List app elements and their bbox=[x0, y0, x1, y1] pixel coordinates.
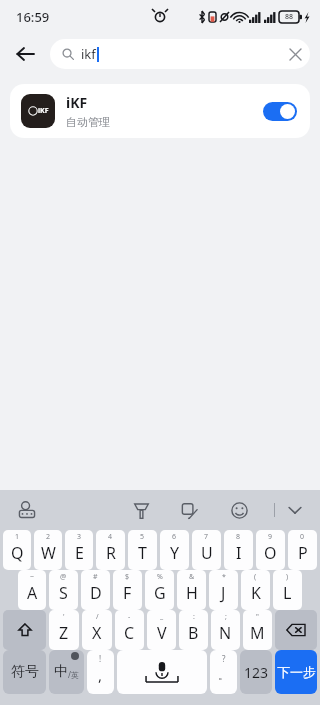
button[interactable]: / bbox=[82, 610, 112, 650]
button[interactable]: Back bbox=[0, 34, 50, 74]
staticText: 3 bbox=[77, 532, 82, 542]
button[interactable]: 符号 bbox=[3, 650, 46, 694]
staticText: iKF bbox=[66, 93, 88, 112]
button[interactable]: iKF bbox=[10, 84, 310, 138]
staticText: # bbox=[93, 572, 98, 582]
button[interactable]: * bbox=[209, 570, 238, 610]
button[interactable]: 3 bbox=[65, 530, 93, 570]
button[interactable]: 2 bbox=[34, 530, 62, 570]
staticText: * bbox=[222, 572, 226, 582]
button[interactable]: ~ bbox=[18, 570, 46, 610]
staticText: G bbox=[154, 582, 166, 604]
button[interactable]: ikf bbox=[50, 39, 310, 69]
button[interactable]: 1 bbox=[3, 530, 31, 570]
button[interactable]: ! bbox=[87, 650, 114, 694]
staticText: T bbox=[138, 542, 147, 564]
staticText: , bbox=[98, 665, 103, 685]
staticText: J bbox=[221, 582, 226, 604]
button[interactable]: ; bbox=[211, 610, 240, 650]
staticText: 8 bbox=[236, 532, 241, 542]
button[interactable]: 中 bbox=[49, 650, 84, 694]
staticText: 9 bbox=[268, 532, 273, 542]
staticText: - bbox=[128, 612, 131, 622]
button[interactable]: : bbox=[179, 610, 208, 650]
staticText: ? bbox=[222, 653, 226, 664]
button[interactable]: 123 bbox=[240, 650, 272, 694]
staticText: 0 bbox=[300, 532, 305, 542]
staticText: D bbox=[90, 582, 102, 604]
staticText: Z bbox=[59, 622, 69, 644]
button[interactable]: 5 bbox=[128, 530, 157, 570]
button[interactable]: ( bbox=[241, 570, 270, 610]
staticText: O bbox=[264, 542, 277, 564]
staticText: M bbox=[250, 622, 265, 644]
staticText: ! bbox=[99, 653, 102, 664]
staticText: ' bbox=[63, 612, 65, 622]
button[interactable]: $ bbox=[113, 570, 142, 610]
button[interactable]: % bbox=[145, 570, 174, 610]
staticText: Q bbox=[11, 542, 24, 564]
staticText: X bbox=[92, 622, 102, 644]
button[interactable]: Theme bbox=[128, 497, 154, 523]
button[interactable]: 9 bbox=[256, 530, 285, 570]
staticText: /英 bbox=[68, 669, 79, 680]
staticText: C bbox=[124, 622, 135, 644]
staticText: 6 bbox=[172, 532, 177, 542]
staticText: ikf bbox=[81, 45, 96, 63]
button[interactable]: " bbox=[243, 610, 272, 650]
staticText: E bbox=[75, 542, 84, 564]
button[interactable]: ' bbox=[49, 610, 79, 650]
button[interactable]: 6 bbox=[160, 530, 189, 570]
button[interactable]: & bbox=[177, 570, 206, 610]
button[interactable]: AI writing bbox=[176, 497, 202, 523]
staticText: B bbox=[188, 622, 199, 644]
button[interactable]: ) bbox=[273, 570, 302, 610]
staticText: 。 bbox=[218, 668, 229, 682]
button[interactable]: 4 bbox=[96, 530, 125, 570]
staticText: R bbox=[106, 542, 116, 564]
button[interactable]: Backspace bbox=[275, 610, 317, 650]
staticText: 5 bbox=[140, 532, 145, 542]
staticText: 4 bbox=[108, 532, 113, 542]
staticText: 2 bbox=[46, 532, 51, 542]
button[interactable]: Emoji bbox=[226, 497, 252, 523]
staticText: 123 bbox=[244, 663, 269, 682]
staticText: 1 bbox=[15, 532, 20, 542]
staticText: A bbox=[27, 582, 38, 604]
button[interactable]: 8 bbox=[224, 530, 253, 570]
staticText: 16:59 bbox=[16, 8, 50, 26]
staticText: 88 bbox=[285, 12, 294, 22]
staticText: L bbox=[283, 582, 292, 604]
button[interactable]: _ bbox=[147, 610, 176, 650]
staticText: " bbox=[256, 612, 259, 622]
button[interactable]: - bbox=[115, 610, 144, 650]
staticText: ; bbox=[225, 612, 227, 622]
staticText: _ bbox=[160, 612, 164, 622]
button[interactable]: Hide keyboard bbox=[282, 497, 308, 523]
button[interactable]: 下一步 bbox=[275, 650, 317, 694]
staticText: & bbox=[189, 572, 195, 582]
staticText: I bbox=[236, 542, 242, 564]
button[interactable]: Toggle auto manage bbox=[260, 96, 300, 126]
staticText: ) bbox=[286, 572, 289, 582]
staticText: S bbox=[59, 582, 68, 604]
button[interactable]: Shift bbox=[3, 610, 46, 650]
button[interactable]: 0 bbox=[288, 530, 317, 570]
button[interactable]: Input settings bbox=[14, 497, 40, 523]
staticText: 自动管理 bbox=[66, 115, 110, 129]
staticText: U bbox=[201, 542, 213, 564]
staticText: ~ bbox=[30, 572, 35, 582]
staticText: W bbox=[41, 542, 56, 564]
staticText: iKF bbox=[38, 106, 49, 116]
staticText: F bbox=[123, 582, 132, 604]
button[interactable]: Clear bbox=[280, 39, 310, 69]
staticText: P bbox=[298, 542, 308, 564]
button[interactable]: 7 bbox=[192, 530, 221, 570]
staticText: % bbox=[157, 572, 163, 582]
button[interactable]: Space bbox=[117, 650, 207, 694]
staticText: Y bbox=[170, 542, 180, 564]
button[interactable]: # bbox=[81, 570, 110, 610]
button[interactable]: @ bbox=[49, 570, 78, 610]
button[interactable]: ? bbox=[210, 650, 237, 694]
staticText: ( bbox=[254, 572, 257, 582]
